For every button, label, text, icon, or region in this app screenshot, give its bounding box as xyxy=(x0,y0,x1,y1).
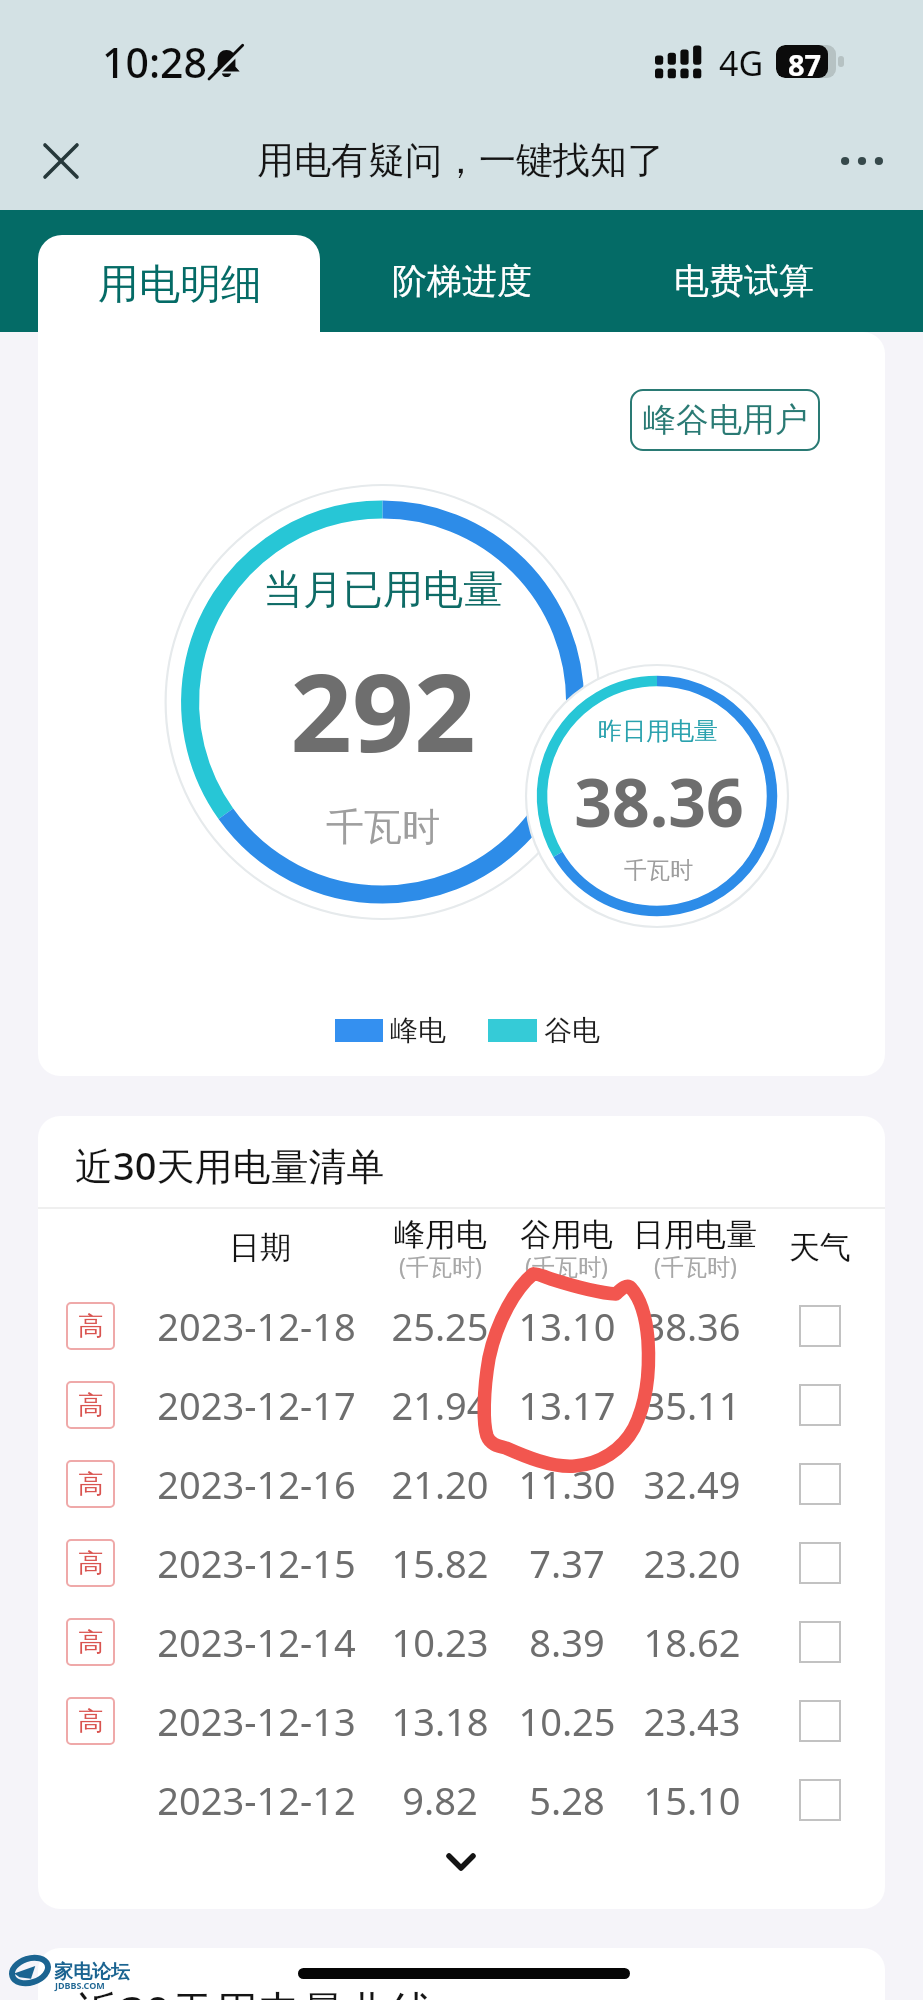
staticText: 15.82 xyxy=(391,1537,489,1589)
staticText: 当月已用电量 xyxy=(263,564,503,614)
button[interactable]: 2023-12-16 xyxy=(38,1445,885,1523)
staticText: 15.10 xyxy=(643,1774,741,1826)
staticText: 2023-12-16 xyxy=(157,1458,356,1510)
button[interactable]: 2023-12-17 xyxy=(38,1366,885,1444)
staticText: 87 xyxy=(788,45,822,78)
staticText: 阶梯进度 xyxy=(392,259,532,303)
staticText: 10:28 xyxy=(102,34,207,90)
staticText: 25.25 xyxy=(391,1300,489,1352)
staticText: JDBBS.COM xyxy=(55,1979,105,1991)
staticText: 日期 xyxy=(229,1228,291,1267)
staticText: 峰谷电用户 xyxy=(643,399,808,441)
staticText: 8.39 xyxy=(529,1616,605,1668)
staticText: 电费试算 xyxy=(674,259,814,303)
staticText: 2023-12-12 xyxy=(157,1774,356,1826)
staticText: 38.36 xyxy=(574,756,744,846)
staticText: (千瓦时) xyxy=(654,1250,737,1281)
button[interactable]: 2023-12-18 xyxy=(38,1287,885,1365)
staticText: 32.49 xyxy=(643,1458,741,1510)
button[interactable]: 峰谷电用户 xyxy=(630,389,820,451)
button[interactable]: 2023-12-13 xyxy=(38,1682,885,1760)
staticText: 18.62 xyxy=(643,1616,741,1668)
staticText: 用电明细 xyxy=(98,259,262,311)
button[interactable]: 高 xyxy=(66,1460,115,1508)
staticText: 高 xyxy=(78,1468,104,1501)
staticText: 峰用电 xyxy=(394,1215,487,1254)
staticText: 2023-12-15 xyxy=(157,1537,356,1589)
staticText: 10.25 xyxy=(518,1695,616,1747)
staticText: 38.36 xyxy=(643,1300,741,1352)
staticText: 2023-12-17 xyxy=(157,1379,356,1431)
staticText: 2023-12-18 xyxy=(157,1300,356,1352)
staticText: 9.82 xyxy=(402,1774,478,1826)
staticText: 日用电量 xyxy=(633,1215,757,1254)
staticText: 13.10 xyxy=(518,1300,616,1352)
staticText: 高 xyxy=(78,1626,104,1659)
staticText: 7.37 xyxy=(529,1537,605,1589)
staticText: 谷用电 xyxy=(520,1215,613,1254)
staticText: (千瓦时) xyxy=(399,1250,482,1281)
staticText: 13.17 xyxy=(518,1379,616,1431)
staticText: 高 xyxy=(78,1547,104,1580)
staticText: 近30天用电量清单 xyxy=(75,1139,385,1191)
staticText: 21.20 xyxy=(391,1458,489,1510)
staticText: 35.11 xyxy=(643,1379,741,1431)
staticText: (千瓦时) xyxy=(525,1250,608,1281)
staticText: 2023-12-13 xyxy=(157,1695,356,1747)
button[interactable]: More options xyxy=(829,128,895,194)
staticText: 4G xyxy=(719,40,764,86)
staticText: 23.20 xyxy=(643,1537,741,1589)
staticText: 天气 xyxy=(789,1228,851,1267)
staticText: 21.94 xyxy=(391,1379,489,1431)
staticText: 11.30 xyxy=(518,1458,616,1510)
staticText: 13.18 xyxy=(391,1695,489,1747)
button[interactable]: 高 xyxy=(66,1618,115,1666)
button[interactable]: 高 xyxy=(66,1381,115,1429)
staticText: 家电论坛 xyxy=(54,1960,130,1984)
staticText: 千瓦时 xyxy=(326,803,440,851)
staticText: 千瓦时 xyxy=(624,856,693,885)
staticText: 峰电 xyxy=(390,1013,446,1048)
staticText: 高 xyxy=(78,1310,104,1343)
button[interactable]: Close xyxy=(27,127,95,195)
button[interactable]: 2023-12-14 xyxy=(38,1603,885,1681)
staticText: 谷电 xyxy=(544,1013,600,1048)
button[interactable]: 高 xyxy=(66,1302,115,1350)
staticText: 用电有疑问，一键找知了 xyxy=(257,137,664,184)
button[interactable]: 阶梯进度 xyxy=(331,210,592,332)
staticText: 2023-12-14 xyxy=(157,1616,356,1668)
staticText: 23.43 xyxy=(643,1695,741,1747)
staticText: 292 xyxy=(290,637,476,784)
staticText: 昨日用电量 xyxy=(598,716,718,746)
button[interactable]: 用电明细 xyxy=(38,235,320,332)
staticText: 高 xyxy=(78,1705,104,1738)
button[interactable]: 2023-12-12 xyxy=(38,1761,885,1839)
button[interactable]: Expand list xyxy=(421,1832,501,1892)
staticText: 高 xyxy=(78,1389,104,1422)
staticText: 5.28 xyxy=(529,1774,605,1826)
button[interactable]: 2023-12-15 xyxy=(38,1524,885,1602)
button[interactable]: 高 xyxy=(66,1539,115,1587)
button[interactable]: 电费试算 xyxy=(613,210,875,332)
staticText: 近30天用电量曲线 xyxy=(76,1981,435,2000)
button[interactable] xyxy=(38,1948,885,2000)
staticText: 10.23 xyxy=(391,1616,489,1668)
button[interactable]: 高 xyxy=(66,1697,115,1745)
